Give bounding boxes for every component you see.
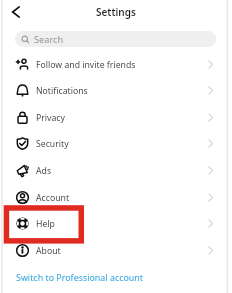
button[interactable]: About bbox=[0, 240, 232, 261]
staticText: Notifications bbox=[36, 85, 88, 97]
staticText: Follow and invite friends bbox=[36, 59, 136, 71]
button[interactable]: Back bbox=[6, 2, 26, 22]
staticText: Help bbox=[36, 218, 55, 230]
staticText: Security bbox=[36, 138, 69, 150]
staticText: Privacy bbox=[36, 112, 65, 124]
button[interactable]: Privacy bbox=[0, 107, 232, 128]
button[interactable]: Switch to Professional account bbox=[8, 269, 152, 285]
staticText: Switch to Professional account bbox=[16, 271, 144, 283]
button[interactable]: Search bbox=[15, 31, 216, 47]
staticText: Search bbox=[34, 33, 64, 46]
staticText: Ads bbox=[36, 165, 52, 177]
staticText: Settings bbox=[96, 5, 136, 19]
button[interactable]: Security bbox=[0, 133, 232, 154]
staticText: Account bbox=[36, 192, 70, 204]
button[interactable]: Ads bbox=[0, 160, 232, 181]
button[interactable]: Account bbox=[0, 187, 232, 208]
button[interactable]: Follow and invite friends bbox=[0, 54, 232, 75]
button[interactable]: Help bbox=[0, 213, 232, 234]
button[interactable]: Notifications bbox=[0, 80, 232, 101]
staticText: About bbox=[36, 245, 61, 257]
